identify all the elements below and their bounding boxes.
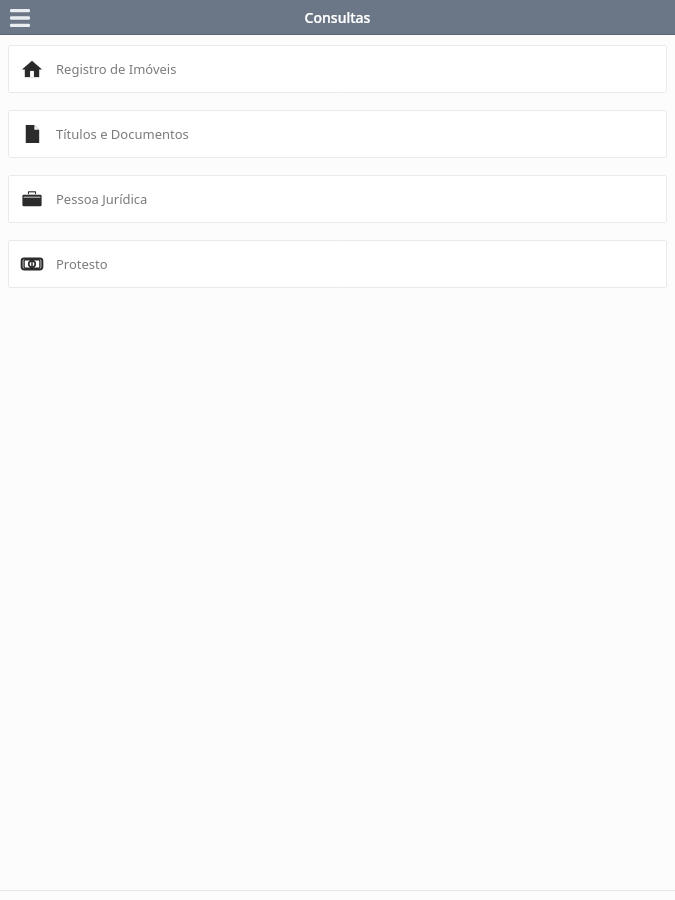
staticText: Registro de Imóveis bbox=[56, 60, 177, 78]
staticText: Consultas bbox=[0, 8, 675, 27]
staticText: Títulos e Documentos bbox=[56, 125, 189, 143]
button[interactable]: Menu bbox=[6, 4, 34, 32]
button[interactable]: Títulos e Documentos bbox=[8, 110, 667, 158]
staticText: Pessoa Jurídica bbox=[56, 190, 148, 208]
staticText: Protesto bbox=[56, 255, 108, 273]
button[interactable]: Registro de Imóveis bbox=[8, 45, 667, 93]
button[interactable]: Protesto bbox=[8, 240, 667, 288]
button[interactable]: Pessoa Jurídica bbox=[8, 175, 667, 223]
